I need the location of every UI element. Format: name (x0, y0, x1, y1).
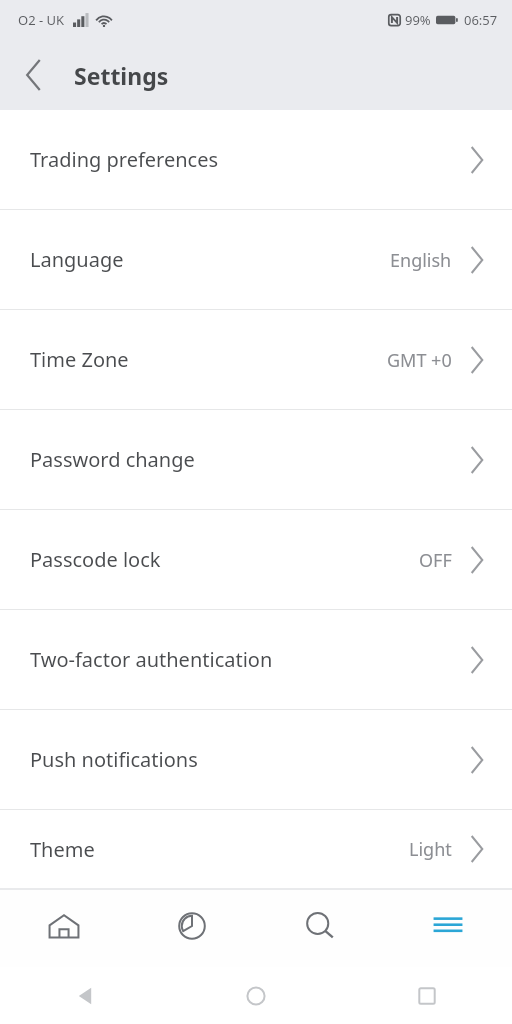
button[interactable]: Two-factor authentication (0, 610, 512, 709)
button[interactable]: Menu (384, 890, 512, 967)
button[interactable]: Time Zone (0, 310, 512, 409)
staticText: Two-factor authentication (30, 646, 273, 673)
staticText: Password change (30, 446, 195, 473)
staticText: 99% (405, 11, 431, 29)
staticText: GMT +0 (387, 348, 452, 373)
button[interactable]: Language (0, 210, 512, 309)
staticText: Push notifications (30, 746, 198, 773)
button[interactable]: Recents (341, 967, 512, 1024)
staticText: English (390, 248, 452, 273)
button[interactable]: Back (8, 49, 60, 101)
button[interactable]: Trading preferences (0, 110, 512, 209)
button[interactable]: Theme (0, 810, 512, 888)
staticText: Trading preferences (30, 146, 219, 173)
button[interactable]: Portfolio (128, 890, 256, 967)
staticText: Passcode lock (30, 546, 161, 573)
staticText: Light (409, 837, 452, 862)
staticText: OFF (419, 548, 452, 573)
staticText: Time Zone (30, 346, 129, 373)
button[interactable]: Push notifications (0, 710, 512, 809)
button[interactable]: Password change (0, 410, 512, 509)
staticText: Language (30, 246, 124, 273)
staticText: Settings (74, 60, 169, 91)
button[interactable]: Passcode lock (0, 510, 512, 609)
button[interactable]: Back (0, 967, 170, 1024)
button[interactable]: Search (256, 890, 384, 967)
staticText: O2 - UK (18, 11, 65, 29)
button[interactable]: Home (170, 967, 341, 1024)
button[interactable]: Home (0, 890, 128, 967)
staticText: Theme (30, 836, 95, 863)
staticText: 06:57 (464, 11, 498, 29)
